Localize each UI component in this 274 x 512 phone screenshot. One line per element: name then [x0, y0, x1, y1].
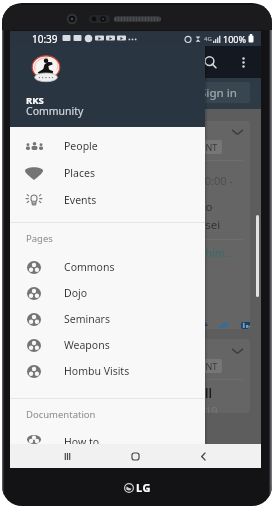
button[interactable]: Dojo — [10, 280, 205, 306]
staticText: People — [64, 139, 98, 153]
staticText: LG — [136, 480, 151, 495]
button[interactable]: Back — [169, 444, 237, 468]
button[interactable]: Recents — [34, 444, 101, 468]
staticText: Sat, 19 Oct 2019 · 09:00 - 10:00 - — [69, 173, 233, 188]
staticText: EVENT — [190, 360, 218, 372]
staticText: How to — [64, 435, 100, 444]
staticText: 100% — [223, 33, 246, 45]
staticText: Dojo — [64, 286, 88, 300]
staticText: Sign in — [200, 85, 238, 101]
button[interactable]: Weapons — [10, 332, 205, 358]
staticText: More information at Budoshim… — [72, 246, 233, 260]
staticText: Places — [64, 166, 95, 180]
staticText: Commons — [64, 260, 115, 274]
staticText: Weapons — [64, 338, 110, 352]
staticText: Documentation — [26, 408, 96, 421]
staticText: Seminars — [64, 312, 110, 326]
staticText: Kids class — a great budo — [74, 199, 213, 215]
button[interactable]: More options — [230, 49, 256, 75]
button[interactable]: Seminars — [10, 306, 205, 332]
staticText: Thu, 12 Dec 2019 — [129, 403, 218, 413]
staticText: 10:39 — [32, 32, 58, 46]
button[interactable]: Search — [196, 48, 224, 76]
staticText: Pages — [26, 232, 53, 245]
staticText: EVENT — [190, 141, 218, 153]
button[interactable]: Commons — [10, 254, 205, 280]
button[interactable]: Hombu Visits — [10, 358, 205, 384]
button[interactable]: Events — [10, 186, 205, 213]
staticText: Events — [64, 193, 97, 207]
staticText: 4G — [204, 35, 212, 43]
staticText: Hombu Visits — [64, 364, 130, 378]
button[interactable]: How to — [10, 435, 205, 444]
staticText: RKS — [26, 94, 44, 107]
button[interactable]: Sign in — [188, 82, 250, 103]
button[interactable]: People — [10, 132, 205, 159]
button[interactable]: Places — [10, 159, 205, 186]
staticText: Community — [26, 104, 84, 118]
staticText: Seminar with Sensei Dell — [71, 386, 212, 402]
button[interactable]: Home — [101, 444, 169, 468]
staticText: session with our sensei — [95, 217, 221, 233]
